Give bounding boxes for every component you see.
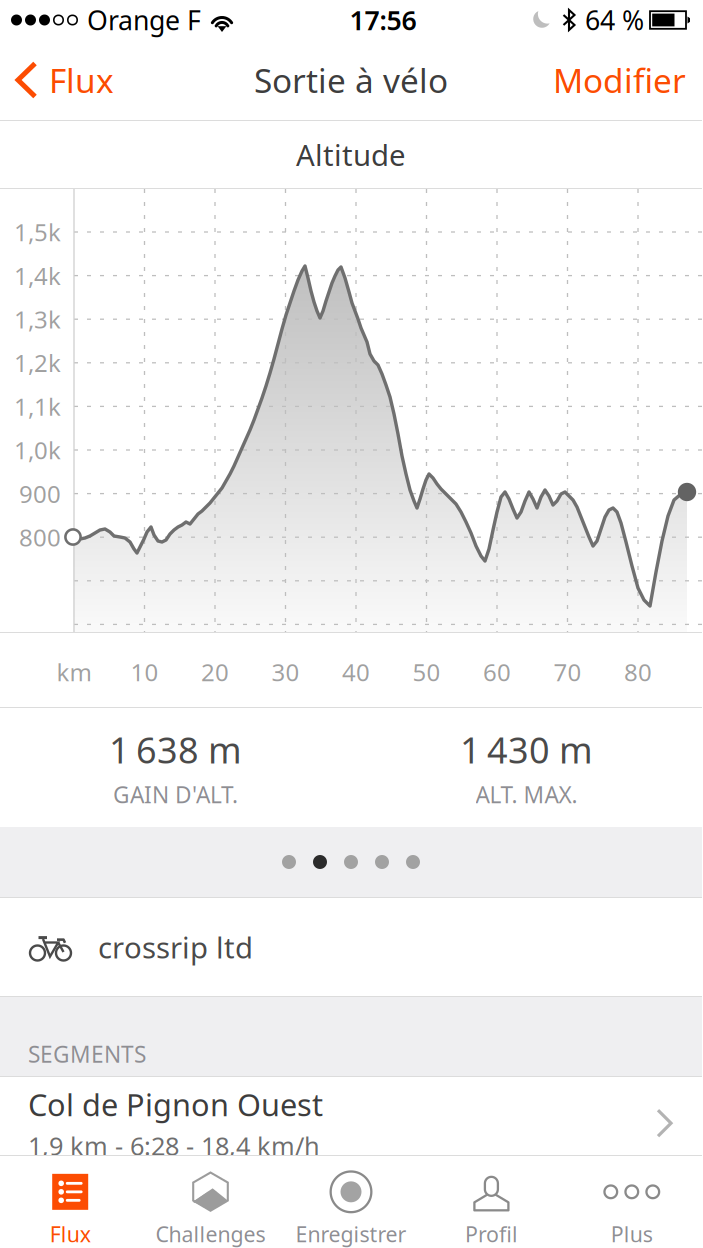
- staticText: Sortie à vélo: [254, 58, 448, 102]
- staticText: 50: [412, 656, 440, 688]
- staticText: SEGMENTS: [28, 1039, 146, 1069]
- button[interactable]: Modifier: [537, 40, 702, 120]
- staticText: 10: [130, 656, 158, 688]
- button[interactable]: Challenges: [140, 1156, 281, 1248]
- staticText: 800: [19, 521, 61, 553]
- staticText: 1,4k: [14, 260, 61, 292]
- staticText: 60: [483, 656, 511, 688]
- staticText: Col de Pignon Ouest: [28, 1084, 323, 1125]
- staticText: 70: [553, 656, 581, 688]
- staticText: 1,1k: [14, 390, 61, 422]
- button[interactable]: Plus: [562, 1156, 702, 1248]
- button[interactable]: Flux: [0, 1156, 140, 1248]
- staticText: Challenges: [156, 1220, 266, 1248]
- staticText: 1,5k: [14, 216, 61, 248]
- staticText: Enregistrer: [295, 1220, 406, 1248]
- staticText: 30: [271, 656, 299, 688]
- staticText: 20: [201, 656, 229, 688]
- staticText: crossrip ltd: [98, 927, 253, 966]
- staticText: Profil: [465, 1220, 518, 1248]
- staticText: Flux: [50, 1220, 91, 1248]
- button[interactable]: Enregistrer: [281, 1156, 421, 1248]
- staticText: 1 430 m: [460, 725, 593, 773]
- staticText: GAIN D'ALT.: [113, 779, 238, 809]
- staticText: Plus: [611, 1220, 653, 1248]
- staticText: ALT. MAX.: [475, 779, 577, 809]
- button[interactable]: Col de Pignon Ouest: [0, 1077, 702, 1155]
- staticText: 80: [624, 656, 652, 688]
- staticText: 1,0k: [14, 434, 61, 466]
- staticText: 64 %: [585, 2, 644, 38]
- staticText: Orange F: [87, 2, 201, 38]
- staticText: km: [56, 656, 91, 688]
- staticText: 40: [342, 656, 370, 688]
- staticText: 17:56: [349, 2, 416, 38]
- button[interactable]: crossrip ltd: [0, 898, 702, 996]
- button[interactable]: Flux: [0, 40, 129, 120]
- staticText: Flux: [49, 58, 114, 102]
- staticText: Modifier: [553, 58, 686, 102]
- staticText: 1,9 km - 6:28 - 18,4 km/h: [28, 1129, 320, 1162]
- staticText: 1 638 m: [109, 725, 242, 773]
- staticText: 1,2k: [14, 347, 61, 379]
- button[interactable]: Profil: [421, 1156, 562, 1248]
- staticText: Altitude: [296, 135, 406, 174]
- staticText: 900: [19, 478, 61, 510]
- staticText: 1,3k: [14, 303, 61, 335]
